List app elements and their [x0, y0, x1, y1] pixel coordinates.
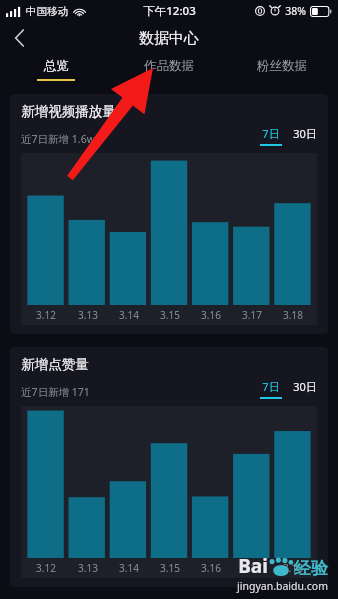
- staticText: 3.12: [36, 308, 56, 322]
- staticText: 3.17: [242, 308, 262, 322]
- staticText: 粉丝数据: [257, 58, 307, 74]
- staticText: 作品数据: [144, 58, 194, 74]
- staticText: 近7日新增 1.6w: [21, 132, 95, 146]
- staticText: 3.14: [119, 308, 139, 322]
- staticText: 新增视频播放量: [21, 103, 116, 120]
- staticText: 新增点赞量: [21, 356, 89, 373]
- button[interactable]: 总览: [0, 54, 112, 85]
- button[interactable]: 7日: [260, 379, 282, 399]
- staticText: 38%: [285, 4, 306, 18]
- button[interactable]: Back: [0, 22, 38, 54]
- button[interactable]: 30日: [293, 126, 317, 146]
- staticText: 3.15: [160, 561, 180, 575]
- staticText: 中国移动: [26, 5, 68, 18]
- staticText: 7日: [262, 126, 280, 141]
- staticText: 3.16: [201, 561, 221, 575]
- staticText: 下午12:03: [143, 3, 196, 19]
- staticText: 3.13: [78, 308, 98, 322]
- staticText: 总览: [44, 58, 69, 74]
- button[interactable]: 新增点赞量: [10, 347, 328, 587]
- button[interactable]: 作品数据: [112, 54, 225, 85]
- staticText: 30日: [293, 126, 317, 141]
- staticText: 3.17: [242, 561, 262, 575]
- staticText: 3.14: [119, 561, 139, 575]
- staticText: 30日: [293, 379, 317, 394]
- staticText: Bai: [238, 553, 268, 579]
- staticText: 3.13: [78, 561, 98, 575]
- staticText: 3.16: [201, 308, 221, 322]
- staticText: 3.18: [283, 308, 303, 322]
- staticText: 近7日新增 171: [21, 385, 90, 399]
- button[interactable]: 粉丝数据: [225, 54, 338, 85]
- staticText: 3.15: [160, 308, 180, 322]
- staticText: 7日: [262, 379, 280, 394]
- button[interactable]: 30日: [293, 379, 317, 399]
- staticText: 数据中心: [139, 29, 199, 48]
- staticText: 经验: [294, 558, 328, 579]
- staticText: 3.12: [36, 561, 56, 575]
- button[interactable]: 7日: [260, 126, 282, 146]
- staticText: jingyan.baidu.com: [237, 579, 328, 593]
- button[interactable]: 新增视频播放量: [10, 94, 328, 334]
- staticText: 3.18: [283, 561, 303, 575]
